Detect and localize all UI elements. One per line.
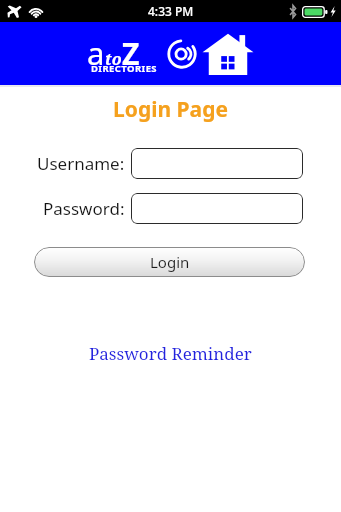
staticText: Login (150, 252, 190, 272)
staticText: Login Page (0, 95, 341, 124)
other: A to Z Directories at Home logo (87, 30, 254, 78)
staticText: Username: (37, 152, 125, 175)
staticText: a (87, 32, 105, 74)
staticText: Password Reminder (89, 342, 252, 365)
button[interactable]: Username input field (131, 148, 303, 179)
button[interactable]: Password Reminder (83, 339, 258, 368)
staticText: DIRECTORIES (91, 62, 157, 75)
staticText: to (105, 48, 122, 70)
button[interactable]: Login (34, 247, 305, 277)
staticText: Z (122, 33, 140, 74)
staticText: Password: (43, 197, 125, 220)
staticText: 4:33 PM (148, 3, 194, 19)
button[interactable]: Password input field (131, 193, 303, 224)
